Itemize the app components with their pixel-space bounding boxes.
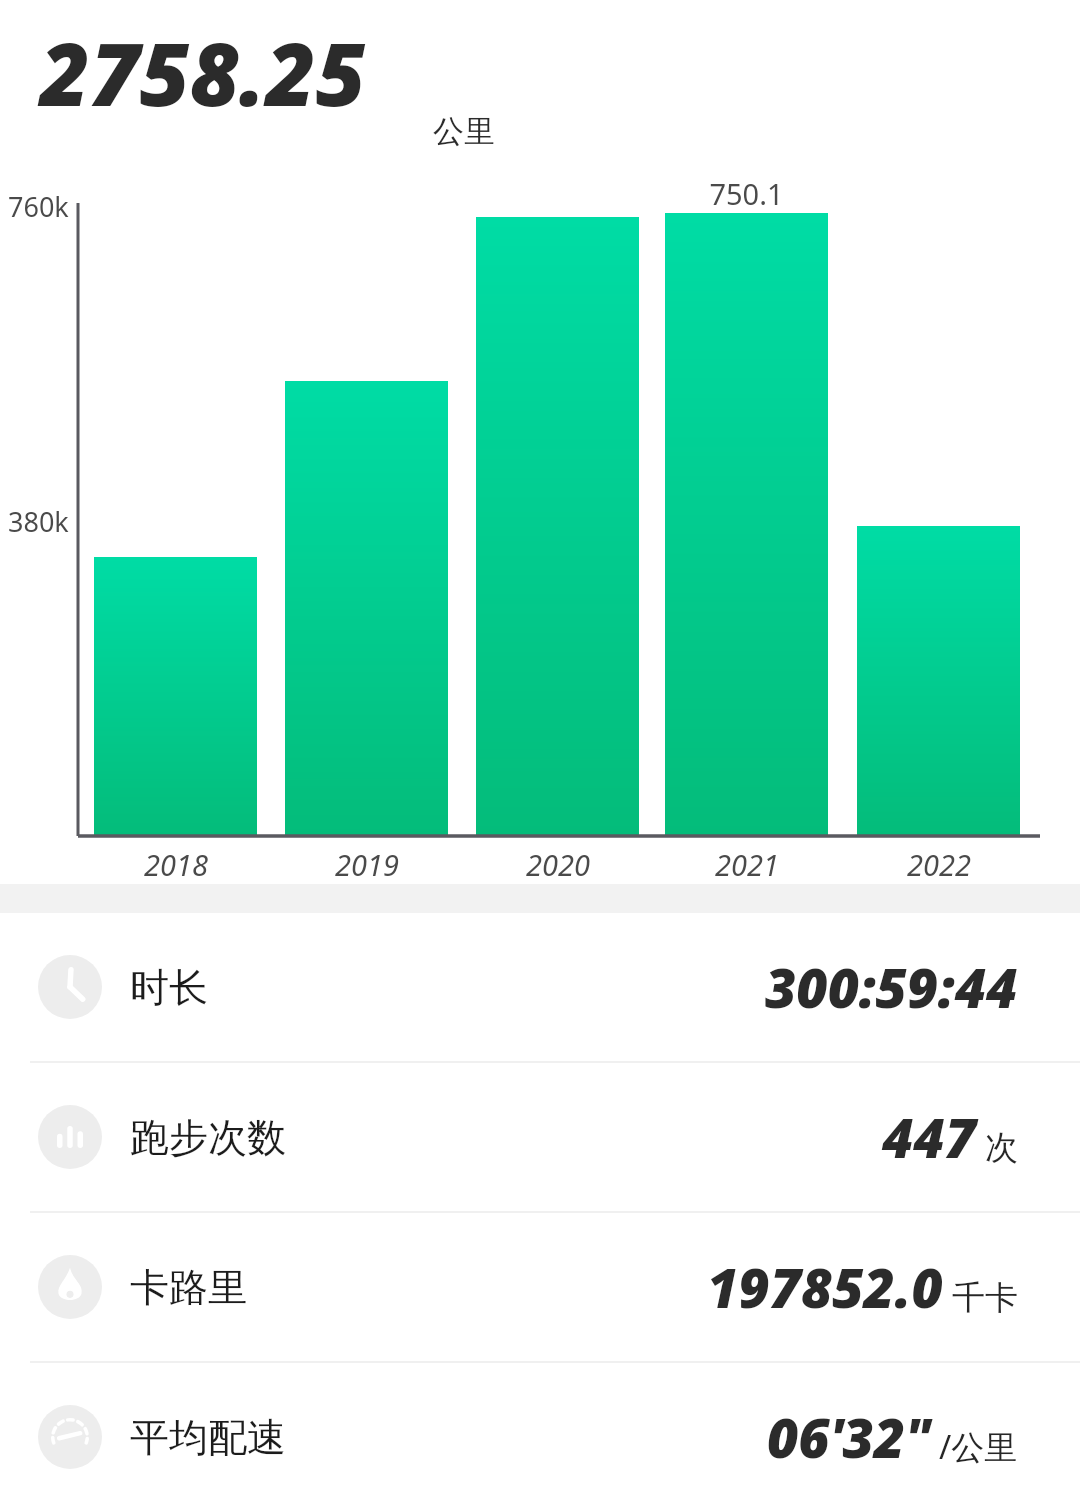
staticText: 300:59:44	[765, 950, 1018, 1024]
button[interactable]: Duration	[0, 913, 1080, 1061]
staticText: 2018	[144, 845, 208, 884]
staticText: 750.1	[709, 174, 784, 213]
button[interactable]: Run count	[0, 1063, 1080, 1211]
staticText: 公里	[433, 112, 495, 151]
staticText: 447	[882, 1100, 976, 1174]
button[interactable]: Average pace	[0, 1363, 1080, 1496]
other: Average pace	[38, 1405, 102, 1469]
staticText: 时长	[130, 963, 208, 1012]
staticText: 卡路里	[130, 1263, 247, 1312]
other: Duration	[38, 955, 102, 1019]
staticText: 平均配速	[130, 1413, 286, 1462]
staticText: 跑步次数	[130, 1113, 286, 1162]
staticText: 次	[985, 1127, 1018, 1169]
staticText: 2019	[335, 845, 399, 884]
staticText: 2020	[526, 845, 590, 884]
other: Run count	[38, 1105, 102, 1169]
staticText: 380k	[8, 503, 69, 540]
staticText: 千卡	[952, 1277, 1018, 1319]
staticText: 2022	[907, 845, 971, 884]
staticText: 06'32"	[767, 1400, 930, 1474]
staticText: 197852.0	[707, 1250, 943, 1324]
staticText: 2021	[715, 845, 779, 884]
other: Calories	[38, 1255, 102, 1319]
button[interactable]: Calories	[0, 1213, 1080, 1361]
staticText: /公里	[939, 1424, 1018, 1469]
staticText: 760k	[8, 188, 69, 225]
staticText: 2758.25	[40, 14, 366, 131]
